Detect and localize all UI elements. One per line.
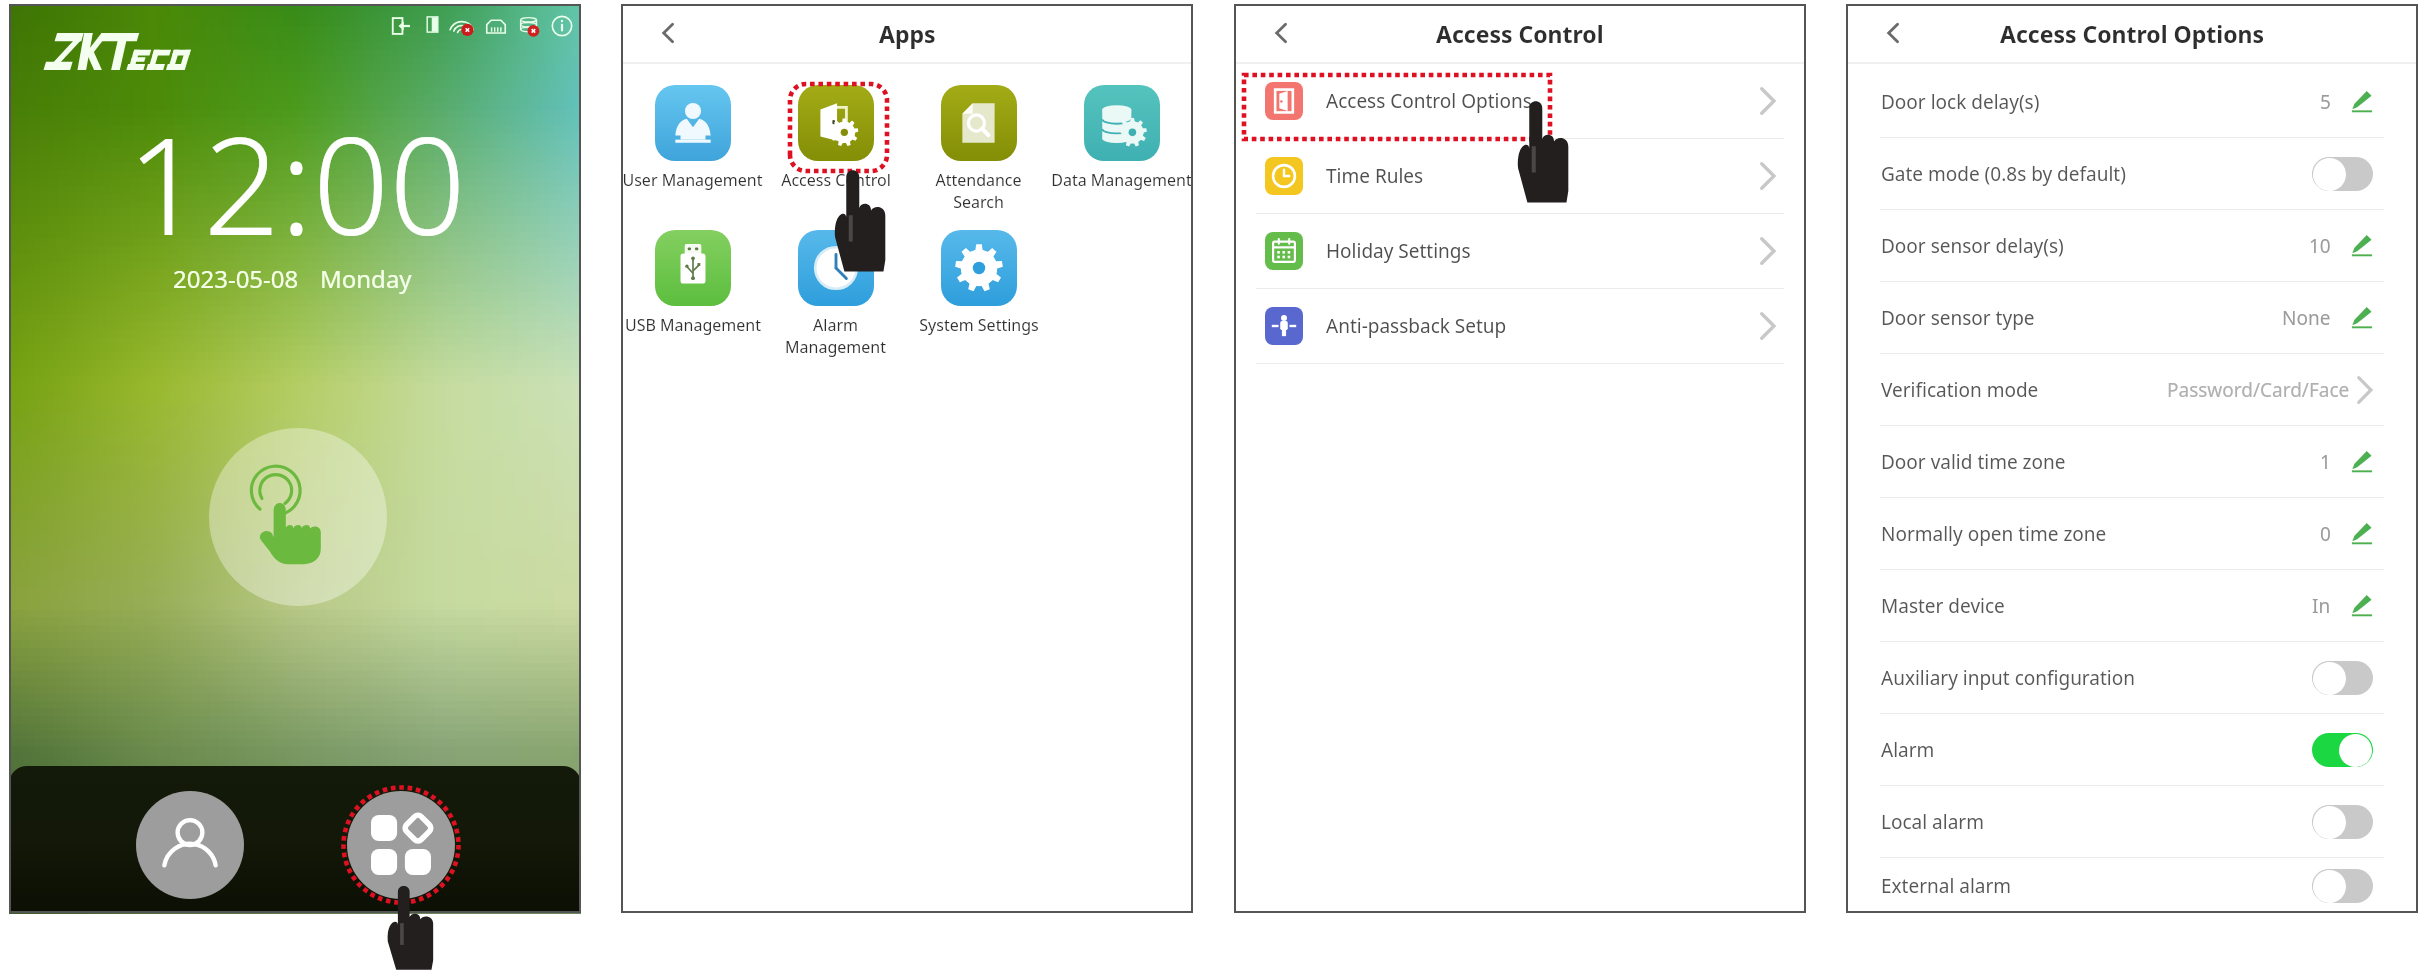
button[interactable]: Door valid time zone [1846,425,2418,497]
button[interactable]: Door sensor delay(s) [1846,209,2418,281]
staticText: Door lock delay(s) [1881,89,2040,115]
staticText: Holiday Settings [1326,238,1471,264]
button[interactable]: Door lock delay(s) [1846,66,2418,137]
staticText: Alarm [1881,737,1935,763]
staticText: Alarm Management [785,314,886,358]
button[interactable]: Door sensor type [1846,281,2418,353]
button[interactable]: Switch on [2312,733,2373,767]
staticText: 5 [2320,89,2331,115]
staticText: Normally open time zone [1881,521,2107,547]
staticText: Door sensor delay(s) [1881,233,2064,259]
button[interactable]: Tap to verify [209,428,387,606]
button[interactable]: Back [1264,16,1298,50]
staticText: 10 [2309,233,2331,259]
staticText: None [2282,305,2331,331]
staticText: External alarm [1881,873,2012,899]
staticText: Apps [879,18,936,49]
staticText: Data Management [1051,169,1192,191]
button[interactable]: Master device [1846,569,2418,641]
button[interactable]: Back [1876,16,1910,50]
staticText: USB Management [625,314,761,336]
button[interactable]: Access Control Options [1234,64,1806,138]
button[interactable]: Data Management [1050,85,1193,191]
staticText: 1 [2320,449,2331,475]
staticText: Monday [320,262,412,295]
staticText: Access Control [1436,18,1604,49]
button[interactable]: Alarm [1846,713,2418,785]
button[interactable]: Switch off [2312,805,2373,839]
button[interactable]: Local alarm [1846,785,2418,857]
button[interactable]: Apps menu [347,791,455,899]
button[interactable]: Anti-passback Setup [1234,288,1806,363]
button[interactable]: Normally open time zone [1846,497,2418,569]
staticText: Access Control Options [1326,88,1532,114]
button[interactable]: Holiday Settings [1234,213,1806,288]
button[interactable]: Gate mode (0.8s by default) [1846,137,2418,209]
staticText: User Management [622,169,763,191]
button[interactable]: Access Control [764,85,907,191]
button[interactable]: External alarm [1846,857,2418,913]
staticText: Door sensor type [1881,305,2035,331]
button[interactable]: Attendance Search [907,85,1050,213]
button[interactable]: Switch off [2312,661,2373,695]
staticText: Master device [1881,593,2005,619]
button[interactable]: System Settings [907,230,1050,336]
button[interactable]: Time Rules [1234,138,1806,213]
button[interactable]: Switch off [2312,157,2373,191]
staticText: 12:00 [127,92,466,275]
staticText: Auxiliary input configuration [1881,665,2135,691]
button[interactable]: USB Management [621,230,764,336]
staticText: 0 [2320,521,2331,547]
staticText: System Settings [919,314,1039,336]
button[interactable]: User Management [621,85,764,191]
button[interactable]: User [136,791,244,899]
button[interactable]: Auxiliary input configuration [1846,641,2418,713]
staticText: Local alarm [1881,809,1984,835]
button[interactable]: Back [651,16,685,50]
button[interactable]: Alarm Management [764,230,907,358]
staticText: 2023-05-08 [173,262,299,295]
staticText: Door valid time zone [1881,449,2066,475]
staticText: Access Control [781,169,891,191]
staticText: Anti-passback Setup [1326,313,1507,339]
button[interactable]: Verification mode [1846,353,2418,425]
staticText: In [2312,593,2331,619]
staticText: Access Control Options [2000,18,2265,49]
staticText: Time Rules [1326,163,1424,189]
staticText: Password/Card/Face [2167,377,2350,403]
staticText: Attendance Search [935,169,1022,213]
staticText: Verification mode [1881,377,2039,403]
staticText: Gate mode (0.8s by default) [1881,161,2126,187]
button[interactable]: Switch off [2312,869,2373,903]
